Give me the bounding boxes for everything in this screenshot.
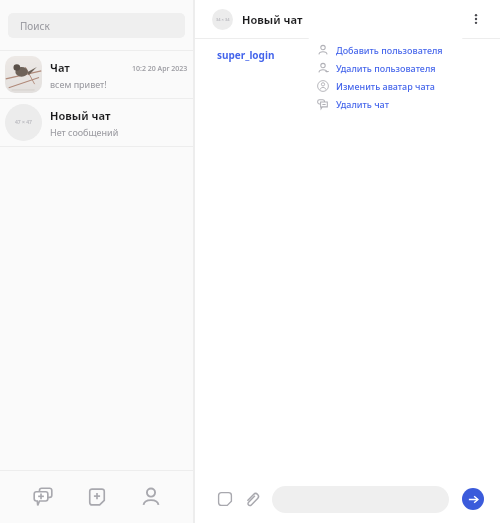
staticText: Изменить аватар чата (336, 80, 435, 92)
staticText: Удалить чат (336, 98, 389, 110)
button[interactable]: Чат (0, 51, 193, 98)
button[interactable]: Удалить чат (308, 95, 463, 113)
staticText: Поиск (20, 19, 50, 33)
button[interactable]: Send (462, 488, 484, 510)
button[interactable]: Поиск (8, 13, 185, 38)
staticText: 34 × 34 (216, 17, 230, 22)
staticText: Добавить пользователя (336, 44, 443, 56)
staticText: 10:2 20 Apr 2023 (132, 64, 188, 74)
staticText: Новый чат (50, 108, 111, 123)
button[interactable]: Изменить аватар чата (308, 77, 463, 95)
staticText: Новый чат (242, 12, 303, 27)
button[interactable]: Удалить пользователя (308, 59, 463, 77)
staticText: Нет сообщений (50, 126, 119, 138)
staticText: super_login (217, 48, 275, 62)
button[interactable]: 47 × 47 (0, 99, 193, 146)
button[interactable]: More options (462, 5, 490, 33)
button[interactable]: Добавить пользователя (308, 41, 463, 59)
button[interactable]: Chat avatar (212, 9, 233, 30)
button[interactable]: Attach file (239, 487, 263, 511)
button[interactable]: New chat (26, 480, 60, 514)
staticText: всем привет! (50, 78, 107, 90)
button[interactable]: Sticker (213, 487, 237, 511)
staticText: Чат (50, 60, 70, 75)
staticText: 47 × 47 (15, 119, 32, 126)
staticText: Удалить пользователя (336, 62, 436, 74)
button[interactable]: New channel (80, 480, 114, 514)
button[interactable]: Profile (134, 480, 168, 514)
